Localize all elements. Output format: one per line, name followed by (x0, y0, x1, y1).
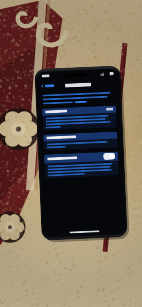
button[interactable] (42, 105, 116, 116)
button[interactable] (43, 131, 117, 142)
button[interactable]: Back to Batteri (41, 84, 54, 88)
button[interactable]: Optimalisert batterilading toggle (44, 151, 118, 164)
